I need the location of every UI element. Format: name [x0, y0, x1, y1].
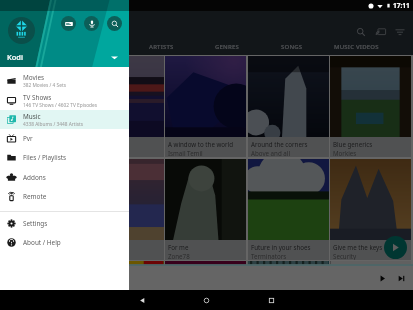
- staticText: 4338 Albums / 3448 Artists: [23, 121, 84, 128]
- staticText: Movies: [23, 73, 45, 82]
- button[interactable]: For me: [165, 159, 246, 260]
- staticText: SONGS: [281, 43, 303, 51]
- button[interactable]: [330, 261, 411, 290]
- button[interactable]: Around the corners: [248, 56, 329, 157]
- button[interactable]: Cast: [371, 22, 391, 42]
- staticText: Zuper: [3, 149, 21, 157]
- staticText: A window to the world: [168, 140, 234, 148]
- staticText: 146 TV Shows / 4602 TV Episodes: [23, 102, 98, 109]
- button[interactable]: TV Shows: [0, 91, 129, 110]
- staticText: GENRES: [215, 43, 239, 51]
- button[interactable]: Search: [351, 22, 371, 42]
- button[interactable]: Remote: [0, 187, 129, 206]
- button[interactable]: Music: [0, 110, 129, 129]
- staticText: Ismail Temil: [168, 149, 203, 157]
- button[interactable]: Next: [393, 270, 409, 286]
- staticText: 17:11: [393, 1, 410, 10]
- button[interactable]: Movies: [0, 71, 129, 90]
- button[interactable]: Home: [197, 290, 215, 310]
- button[interactable]: GENRES: [194, 38, 259, 55]
- button[interactable]: Remote: [61, 16, 76, 31]
- button[interactable]: ARTISTS: [129, 38, 194, 55]
- button[interactable]: Voice search: [84, 16, 99, 31]
- staticText: Kodi: [7, 52, 23, 62]
- button[interactable]: Switch host: [108, 51, 121, 64]
- button[interactable]: Sort: [390, 22, 410, 42]
- button[interactable]: Future in your shoes: [248, 159, 329, 260]
- button[interactable]: MUSIC VIDEOS: [324, 38, 389, 55]
- staticText: Terminators: [251, 252, 287, 260]
- button[interactable]: Pvr: [0, 129, 129, 148]
- button[interactable]: Search: [107, 16, 122, 31]
- button[interactable]: Give me the keys: [330, 159, 411, 260]
- button[interactable]: [165, 261, 246, 290]
- button[interactable]: Thunder: [83, 56, 164, 157]
- staticText: Upgrade: [3, 243, 29, 251]
- staticText: Above and all: [251, 149, 290, 157]
- staticText: Addons: [23, 173, 46, 182]
- button[interactable]: Recents: [262, 290, 280, 310]
- staticText: Music: [23, 112, 41, 121]
- staticText: Future in your shoes: [251, 243, 311, 251]
- button[interactable]: Upgrade: [83, 159, 164, 260]
- button[interactable]: Upgrade: [0, 159, 81, 260]
- button[interactable]: Addons: [0, 168, 129, 187]
- button[interactable]: A window to the world: [165, 56, 246, 157]
- staticText: Pvr: [23, 134, 33, 143]
- button[interactable]: SONGS: [259, 38, 324, 55]
- staticText: Around the corners: [251, 140, 308, 148]
- staticText: Security: [333, 252, 357, 260]
- button[interactable]: Play all: [384, 236, 407, 259]
- button[interactable]: Play: [374, 270, 390, 286]
- staticText: Remote: [23, 192, 47, 201]
- button[interactable]: Settings: [0, 214, 129, 233]
- staticText: 382 Movies / 4 Sets: [23, 82, 66, 89]
- staticText: Files / Playlists: [23, 153, 67, 162]
- button[interactable]: Thunder: [0, 56, 81, 157]
- staticText: Settings: [23, 219, 48, 228]
- button[interactable]: About / Help: [0, 233, 129, 252]
- staticText: MUSIC VIDEOS: [334, 43, 379, 51]
- button[interactable]: [248, 261, 329, 290]
- staticText: Thunder: [3, 140, 28, 148]
- button[interactable]: Kodi host: [8, 17, 35, 44]
- staticText: Blue generics: [333, 140, 373, 148]
- staticText: Give me the keys: [333, 243, 383, 251]
- staticText: ARTISTS: [149, 43, 174, 51]
- staticText: About / Help: [23, 238, 61, 247]
- button[interactable]: Files / Playlists: [0, 148, 129, 167]
- staticText: Morkies: [333, 149, 357, 157]
- button[interactable]: [83, 261, 164, 290]
- button[interactable]: Back: [133, 290, 151, 310]
- staticText: TV Shows: [23, 93, 52, 102]
- button[interactable]: Blue generics: [330, 56, 411, 157]
- staticText: For me: [168, 243, 189, 251]
- staticText: Zone78: [168, 252, 190, 260]
